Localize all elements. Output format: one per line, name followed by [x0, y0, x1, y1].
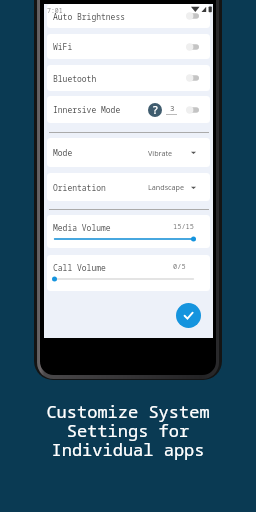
staticText: 3	[170, 103, 175, 113]
button[interactable]: Media Volume	[47, 215, 210, 248]
staticText: Auto Brightness	[53, 11, 125, 22]
staticText: Bluetooth	[53, 73, 97, 84]
staticText: WiFi	[53, 41, 73, 52]
staticText: Vibrate	[148, 148, 173, 158]
button[interactable]: WiFi	[47, 34, 210, 59]
button[interactable]: Bluetooth	[47, 65, 210, 91]
staticText: Customize System Settings for Individual…	[0, 400, 256, 461]
button[interactable]: Innersive Mode	[47, 96, 210, 123]
button[interactable]: Mode	[47, 138, 210, 167]
staticText: Mode	[53, 147, 73, 158]
staticText: ?	[153, 103, 158, 117]
staticText: Call Volume	[53, 262, 106, 273]
button[interactable]: Call Volume	[47, 255, 210, 291]
staticText: 0/5	[173, 262, 186, 272]
staticText: Innersive Mode	[53, 104, 121, 115]
button[interactable]: Help	[148, 103, 162, 117]
staticText: Orientation	[53, 182, 106, 193]
button[interactable]: Auto Brightness	[47, 4, 210, 28]
button[interactable]: Toggle	[186, 10, 199, 22]
staticText: Media Volume	[53, 222, 111, 233]
staticText: 15/15	[173, 222, 194, 232]
button[interactable]: Toggle	[186, 72, 199, 84]
button[interactable]: Toggle	[186, 104, 199, 116]
staticText: Landscape	[148, 182, 185, 192]
button[interactable]: Orientation	[47, 173, 210, 201]
button[interactable]: Confirm	[176, 303, 201, 328]
staticText: 7:01	[47, 6, 63, 15]
button[interactable]: Toggle	[186, 41, 199, 53]
